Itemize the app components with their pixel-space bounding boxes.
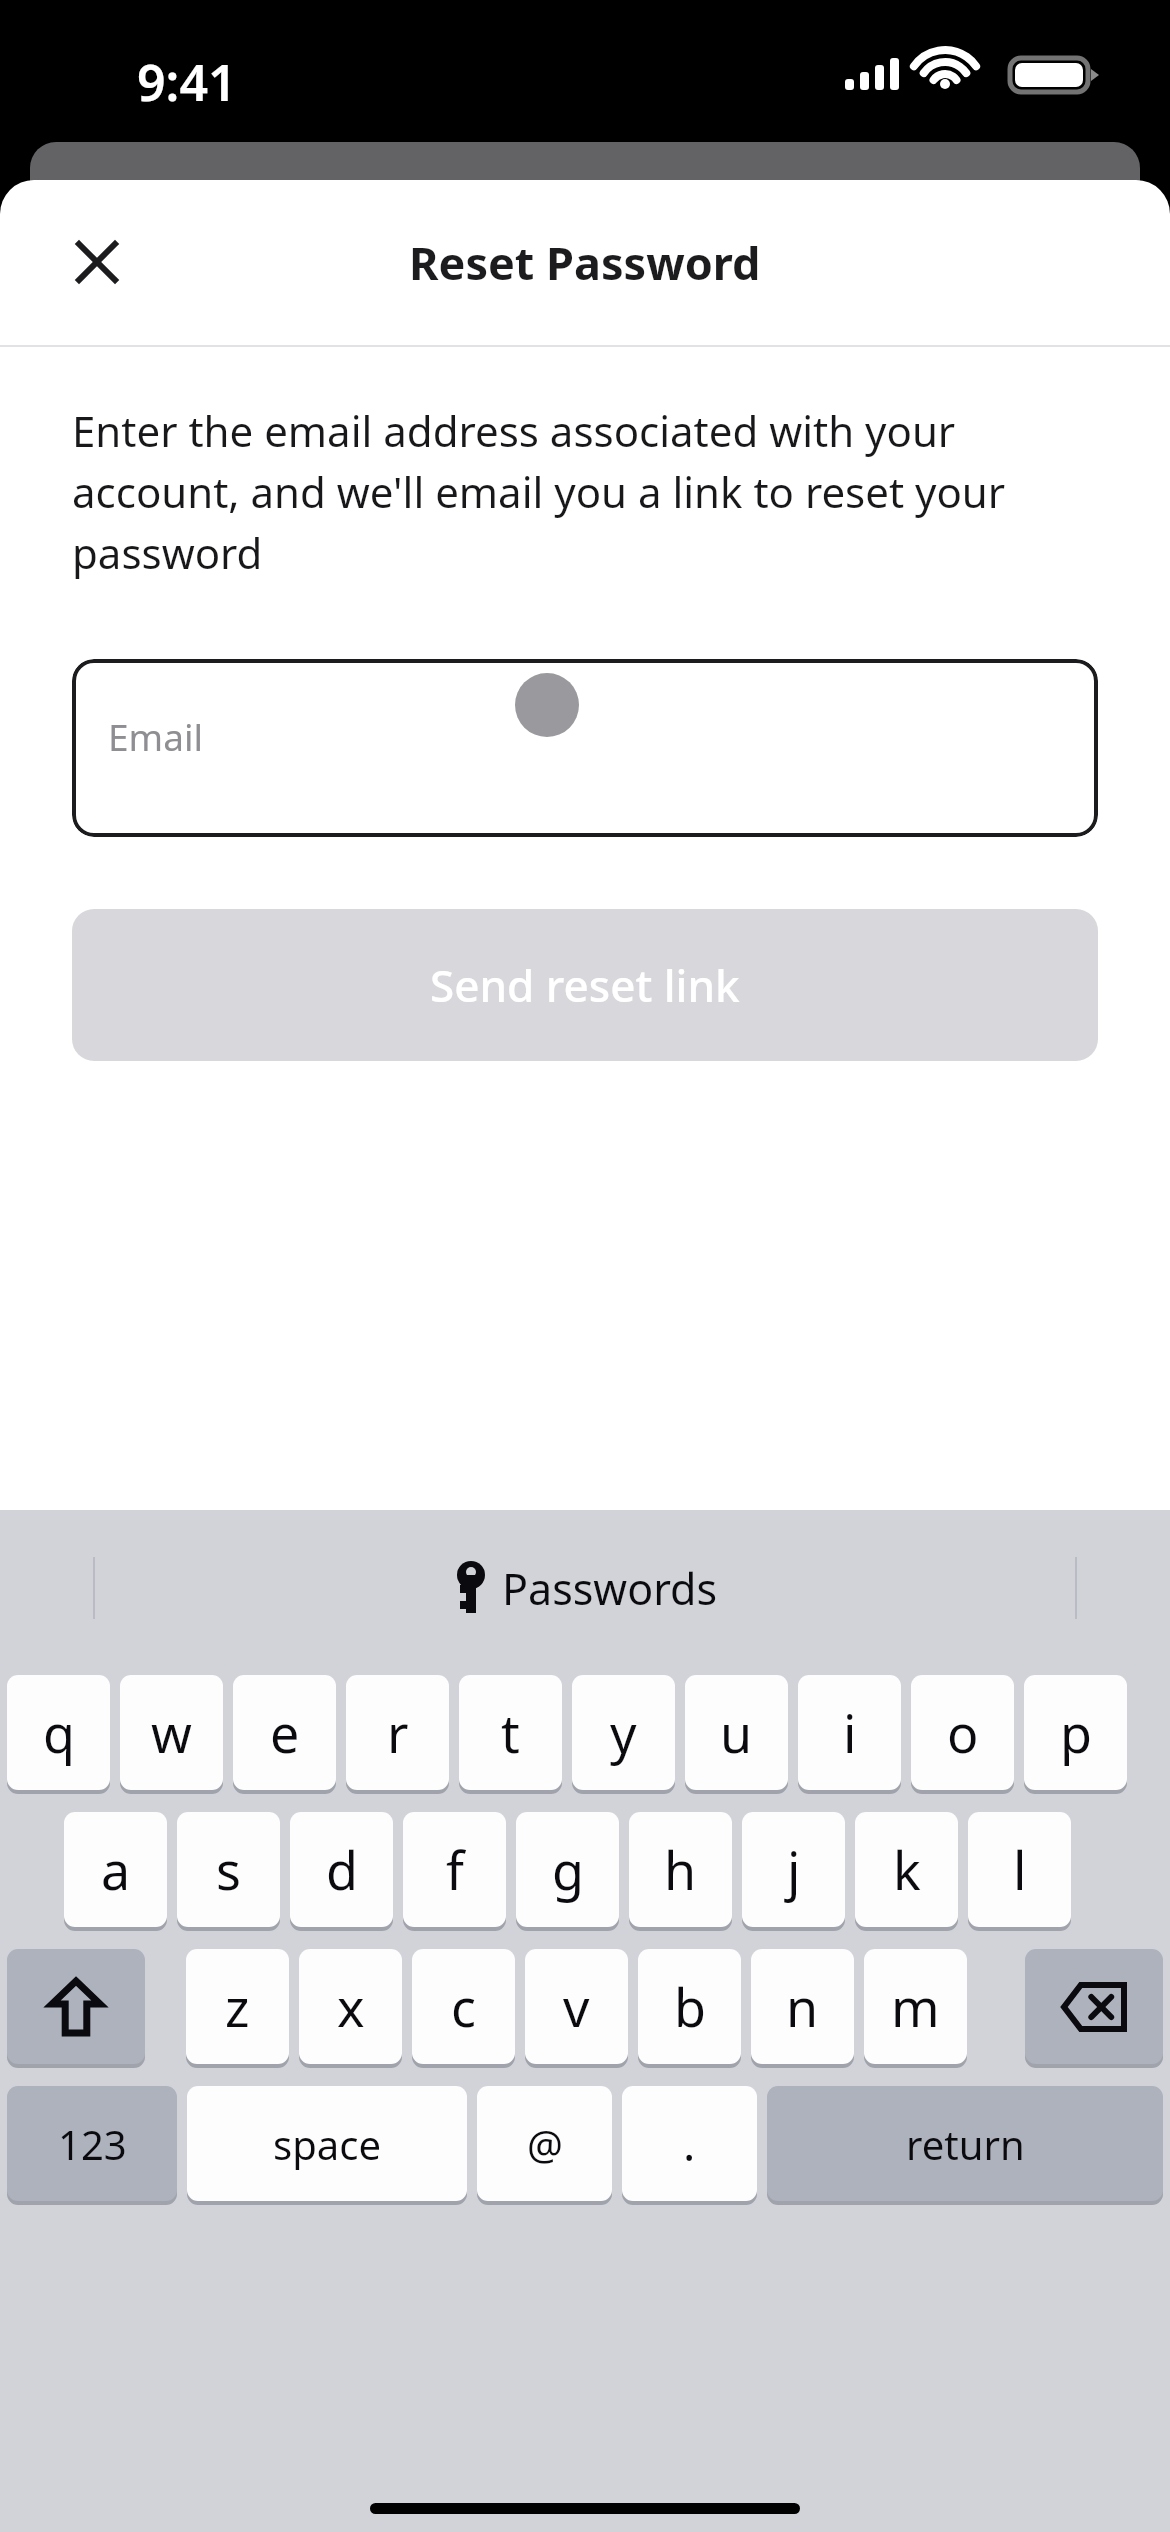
staticText: s xyxy=(216,1834,241,1905)
staticText: q xyxy=(43,1697,75,1768)
staticText: d xyxy=(326,1834,358,1905)
staticText: x xyxy=(337,1971,365,2042)
button[interactable] xyxy=(622,2086,757,2201)
button[interactable] xyxy=(187,2086,467,2201)
button[interactable] xyxy=(186,1949,289,2064)
button[interactable] xyxy=(346,1675,449,1790)
button[interactable] xyxy=(1024,1675,1127,1790)
staticText: return xyxy=(906,2117,1025,2171)
button[interactable] xyxy=(516,1812,619,1927)
staticText: e xyxy=(270,1697,300,1768)
button[interactable] xyxy=(751,1949,854,2064)
button[interactable] xyxy=(177,1812,280,1927)
staticText: u xyxy=(720,1697,753,1768)
other: Backspace xyxy=(1061,1982,1127,2032)
staticText: . xyxy=(683,2112,696,2175)
staticText: l xyxy=(1013,1834,1027,1905)
staticText: w xyxy=(151,1697,192,1768)
staticText: b xyxy=(674,1971,706,2042)
staticText: 123 xyxy=(58,2117,127,2171)
button[interactable] xyxy=(767,2086,1163,2201)
button[interactable] xyxy=(459,1675,562,1790)
button[interactable] xyxy=(855,1812,958,1927)
button[interactable] xyxy=(525,1949,628,2064)
staticText: g xyxy=(552,1834,584,1905)
staticText: h xyxy=(664,1834,697,1905)
staticText: m xyxy=(891,1971,940,2042)
button[interactable] xyxy=(7,1949,145,2064)
staticText: Passwords xyxy=(502,1559,718,1618)
button[interactable] xyxy=(64,1812,167,1927)
staticText: z xyxy=(225,1971,250,2042)
staticText: t xyxy=(501,1697,520,1768)
button[interactable] xyxy=(572,1675,675,1790)
staticText: Enter the email address associated with … xyxy=(72,402,1006,581)
staticText: f xyxy=(446,1834,464,1905)
button[interactable] xyxy=(1025,1949,1163,2064)
staticText: a xyxy=(101,1834,131,1905)
button[interactable] xyxy=(403,1812,506,1927)
button[interactable] xyxy=(412,1949,515,2064)
staticText: Send reset link xyxy=(430,955,740,1015)
button[interactable]: Send reset link xyxy=(72,909,1098,1061)
button[interactable] xyxy=(290,1812,393,1927)
staticText: n xyxy=(786,1971,819,2042)
button[interactable]: Passwords xyxy=(452,1557,718,1619)
staticText: i xyxy=(843,1697,857,1768)
button[interactable]: Close xyxy=(56,221,138,303)
staticText: space xyxy=(273,2117,381,2171)
staticText: Reset Password xyxy=(409,232,761,293)
staticText: v xyxy=(563,1971,590,2042)
staticText: 9:41 xyxy=(137,48,237,116)
staticText: y xyxy=(610,1697,637,1768)
staticText: j xyxy=(787,1834,801,1905)
staticText: p xyxy=(1060,1697,1092,1768)
staticText: k xyxy=(893,1834,921,1905)
other: Shift xyxy=(49,1978,103,2036)
button[interactable] xyxy=(638,1949,741,2064)
button[interactable] xyxy=(7,2086,177,2201)
staticText: Email xyxy=(108,711,204,761)
button[interactable] xyxy=(233,1675,336,1790)
button[interactable] xyxy=(299,1949,402,2064)
staticText: c xyxy=(451,1971,476,2042)
staticText: o xyxy=(947,1697,979,1768)
button[interactable] xyxy=(742,1812,845,1927)
button[interactable] xyxy=(798,1675,901,1790)
button[interactable] xyxy=(477,2086,612,2201)
button[interactable] xyxy=(685,1675,788,1790)
button[interactable] xyxy=(120,1675,223,1790)
button[interactable] xyxy=(7,1675,110,1790)
button[interactable] xyxy=(864,1949,967,2064)
staticText: @ xyxy=(527,2117,563,2171)
button[interactable] xyxy=(629,1812,732,1927)
button[interactable] xyxy=(968,1812,1071,1927)
staticText: r xyxy=(387,1697,409,1768)
button[interactable] xyxy=(911,1675,1014,1790)
button[interactable]: Email xyxy=(72,659,1098,837)
